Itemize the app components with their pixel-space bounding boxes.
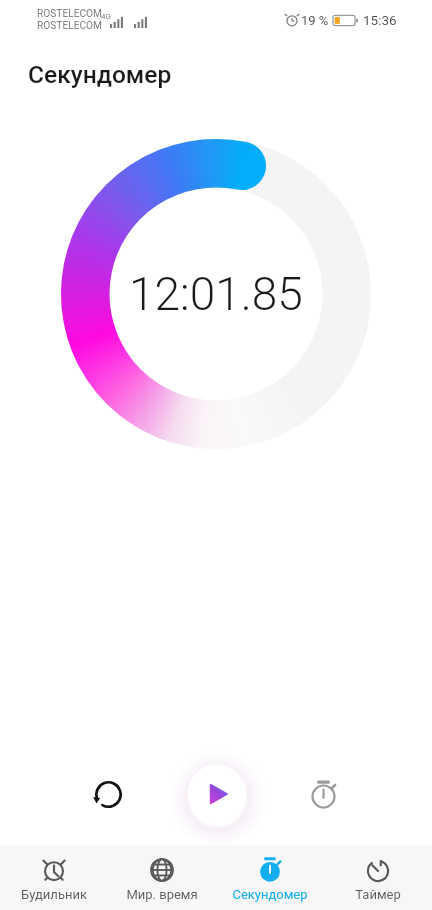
button[interactable]: Таймер [324, 845, 432, 910]
staticText: Мир. время [126, 887, 198, 902]
staticText: 15:36 [363, 12, 397, 28]
staticText: 4G [101, 12, 111, 21]
button[interactable]: Мир. время [108, 845, 216, 910]
button[interactable]: Секундомер [216, 845, 324, 910]
staticText: 12:01.85 [129, 267, 303, 321]
button[interactable]: Reset [84, 770, 132, 818]
button[interactable]: Lap [299, 770, 347, 818]
button[interactable]: Start [166, 743, 268, 845]
staticText: Секундомер [28, 60, 172, 89]
button[interactable]: Будильник [0, 845, 108, 910]
staticText: Будильник [21, 887, 87, 902]
staticText: ROSTELECOM [37, 20, 103, 32]
staticText: ROSTELECOM [37, 8, 103, 20]
staticText: Таймер [355, 887, 401, 902]
staticText: 19 % [301, 13, 329, 28]
staticText: Секундомер [232, 887, 308, 902]
